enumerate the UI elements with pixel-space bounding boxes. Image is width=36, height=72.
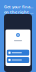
staticText: Get your finances [4,4,34,9]
button[interactable] [7,57,29,63]
button[interactable] [7,50,29,56]
staticText: on the right track [4,9,34,15]
